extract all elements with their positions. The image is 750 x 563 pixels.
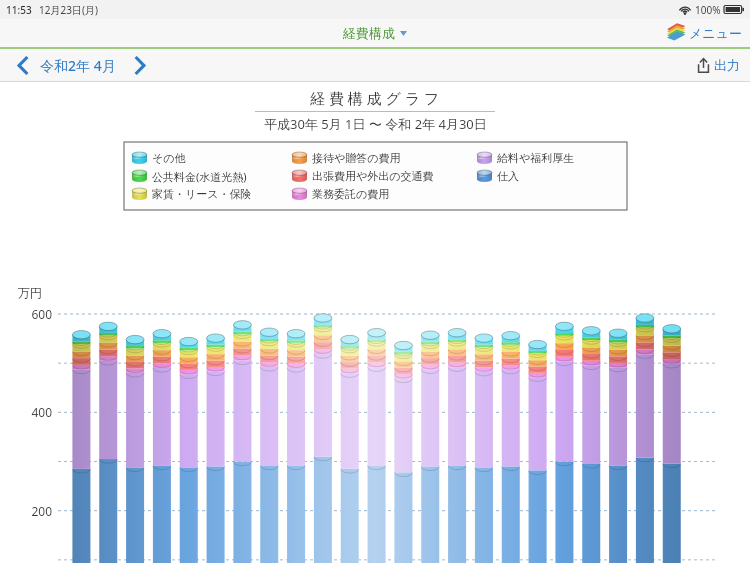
button[interactable]: 経費構成 bbox=[343, 25, 407, 41]
staticText: 給料や福利厚生 bbox=[497, 151, 575, 165]
staticText: 11:53 bbox=[6, 3, 32, 17]
staticText: 公共料金(水道光熱) bbox=[152, 169, 247, 184]
button[interactable]: メニュー bbox=[666, 25, 742, 41]
staticText: 令和2年 4月 bbox=[40, 56, 116, 75]
staticText: 経費構成 bbox=[343, 25, 395, 41]
staticText: 経 費 構 成 グ ラ フ bbox=[310, 88, 440, 108]
staticText: 100% bbox=[695, 3, 721, 17]
button[interactable]: 出力 bbox=[697, 57, 740, 73]
staticText: 平成30年 5月 1日 〜 令和 2年 4月30日 bbox=[264, 115, 487, 133]
button[interactable]: 前の月 bbox=[10, 52, 36, 78]
staticText: 業務委託の費用 bbox=[312, 187, 390, 201]
staticText: 600 bbox=[12, 306, 52, 322]
staticText: 出張費用や外出の交通費 bbox=[312, 169, 434, 183]
staticText: 出力 bbox=[714, 57, 740, 73]
staticText: 400 bbox=[12, 404, 52, 420]
staticText: 家賃・リース・保険 bbox=[152, 187, 252, 201]
staticText: 万円 bbox=[18, 285, 42, 300]
staticText: 200 bbox=[12, 503, 52, 519]
button[interactable]: 令和2年 4月 bbox=[40, 56, 116, 75]
staticText: 仕入 bbox=[497, 169, 519, 183]
staticText: メニュー bbox=[689, 25, 742, 41]
staticText: その他 bbox=[152, 151, 186, 165]
button[interactable]: 次の月 bbox=[126, 52, 152, 78]
staticText: 12月23日(月) bbox=[39, 3, 98, 17]
staticText: 接待や贈答の費用 bbox=[312, 151, 401, 165]
